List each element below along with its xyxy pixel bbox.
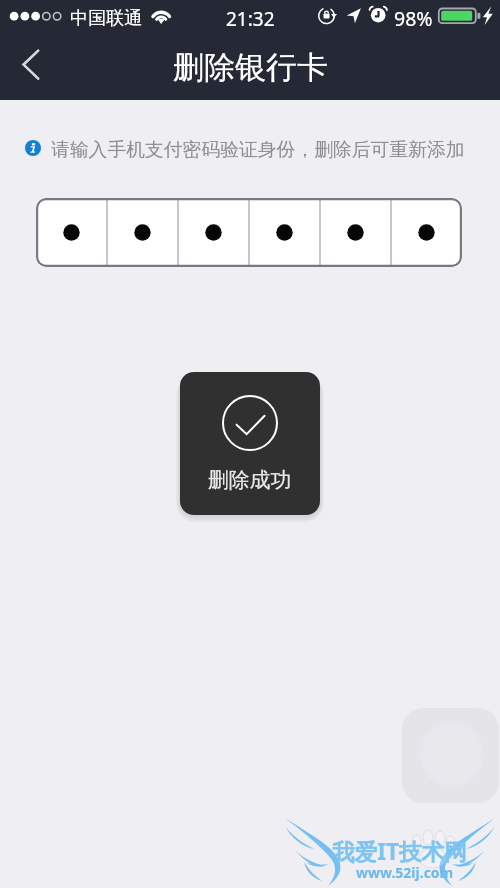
staticText: 删除成功 xyxy=(208,467,292,493)
staticText: 我爱IT技术网 xyxy=(332,836,467,867)
button[interactable]: Payment password, 6 digits entered xyxy=(36,198,462,267)
staticText: www.52ij.com xyxy=(356,863,454,882)
button[interactable]: Back xyxy=(6,41,54,89)
staticText: 98% xyxy=(394,5,433,32)
staticText: 21:32 xyxy=(226,6,275,32)
staticText: 请输入手机支付密码验证身份，删除后可重新添加 xyxy=(51,138,465,162)
staticText: 删除银行卡 xyxy=(173,48,328,87)
staticText: 中国联通 xyxy=(70,7,142,30)
